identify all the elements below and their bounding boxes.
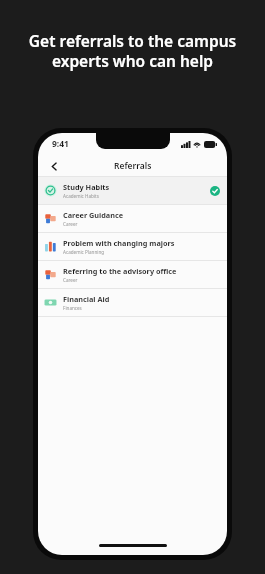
staticText: Financial Aid <box>63 294 110 304</box>
staticText: Academic Planning <box>63 249 105 255</box>
staticText: Referring to the advisory office <box>63 266 177 276</box>
button[interactable]: Referring to the advisory office <box>38 261 227 288</box>
button[interactable]: Problem with changing majors <box>38 233 227 260</box>
staticText: 9:41 <box>52 138 69 150</box>
staticText: Referrals <box>114 160 152 172</box>
button[interactable]: Back <box>44 156 64 176</box>
staticText: Study Habits <box>63 182 110 192</box>
button[interactable]: Study Habits <box>38 177 227 204</box>
button[interactable]: Career Guidance <box>38 205 227 232</box>
button[interactable]: Financial Aid <box>38 289 227 316</box>
staticText: Career <box>63 277 78 283</box>
staticText: Academic Habits <box>63 193 99 199</box>
staticText: Career Guidance <box>63 210 124 220</box>
staticText: Finances <box>63 305 82 311</box>
staticText: Get referrals to the campus experts who … <box>14 30 251 72</box>
staticText: Problem with changing majors <box>63 238 175 248</box>
staticText: Career <box>63 221 78 227</box>
